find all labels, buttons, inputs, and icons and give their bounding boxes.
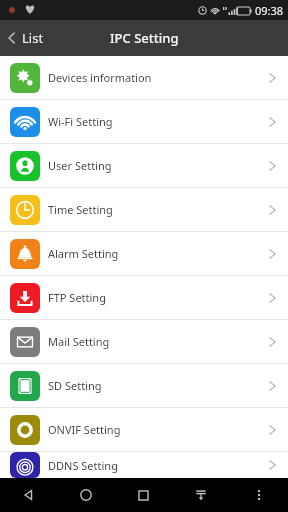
button[interactable]: Recent apps [114,478,172,512]
staticText: Mail Setting [48,334,110,349]
staticText: List [22,29,44,47]
button[interactable]: Wi-Fi Setting [0,100,288,143]
staticText: IPC Setting [110,29,179,47]
button[interactable]: DDNS Setting [0,452,288,478]
staticText: SD Setting [48,378,102,393]
staticText: Alarm Setting [48,246,119,261]
staticText: 09:38 [255,3,284,18]
button[interactable]: Home [57,478,114,512]
button[interactable]: ONVIF Setting [0,408,288,451]
button[interactable]: More options [230,478,288,512]
button[interactable]: Devices information [0,56,288,99]
button[interactable]: Alarm Setting [0,232,288,275]
button[interactable]: Hide navigation bar [172,478,230,512]
staticText: Devices information [48,70,152,85]
staticText: DDNS Setting [48,458,118,473]
staticText: ONVIF Setting [48,422,121,437]
button[interactable]: Time Setting [0,188,288,231]
button[interactable]: Mail Setting [0,320,288,363]
staticText: Wi-Fi Setting [48,114,113,129]
button[interactable]: Back [0,478,57,512]
button[interactable]: List [0,25,54,51]
button[interactable]: SD Setting [0,364,288,407]
staticText: Time Setting [48,202,113,217]
staticText: User Setting [48,158,112,173]
button[interactable]: User Setting [0,144,288,187]
staticText: FTP Setting [48,290,106,305]
button[interactable]: FTP Setting [0,276,288,319]
